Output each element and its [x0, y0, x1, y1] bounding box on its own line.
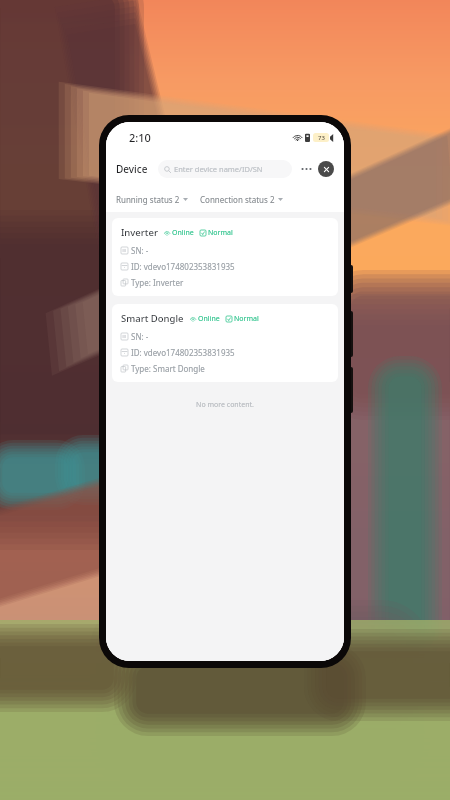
staticText: Type: Inverter — [131, 277, 184, 288]
staticText: Type: Smart Dongle — [131, 363, 205, 374]
staticText: Connection status 2 — [200, 194, 275, 205]
staticText: Normal — [234, 314, 259, 324]
staticText: 2:10 — [129, 130, 151, 145]
staticText: SN: - — [131, 331, 149, 342]
staticText: ID: vdevo174802353831935 — [131, 347, 235, 358]
staticText: Normal — [208, 228, 233, 238]
staticText: Enter device name/ID/SN — [174, 164, 263, 174]
button[interactable]: Enter device name/ID/SN — [158, 160, 292, 178]
staticText: Online — [172, 228, 194, 238]
staticText: SN: - — [131, 245, 149, 256]
staticText: No more content. — [106, 400, 344, 410]
button[interactable]: Close — [318, 161, 334, 177]
button[interactable]: Running status 2 — [116, 191, 188, 208]
button[interactable]: Smart Dongle — [112, 304, 338, 382]
button[interactable]: Connection status 2 — [200, 191, 283, 208]
staticText: Smart Dongle — [121, 312, 184, 325]
button[interactable]: Device — [116, 162, 148, 176]
staticText: Running status 2 — [116, 194, 180, 205]
staticText: Inverter — [121, 226, 158, 239]
button[interactable]: More options — [298, 161, 314, 177]
staticText: ID: vdevo174802353831935 — [131, 261, 235, 272]
staticText: 73 — [318, 134, 325, 142]
staticText: Online — [198, 314, 220, 324]
button[interactable]: Inverter — [112, 218, 338, 296]
